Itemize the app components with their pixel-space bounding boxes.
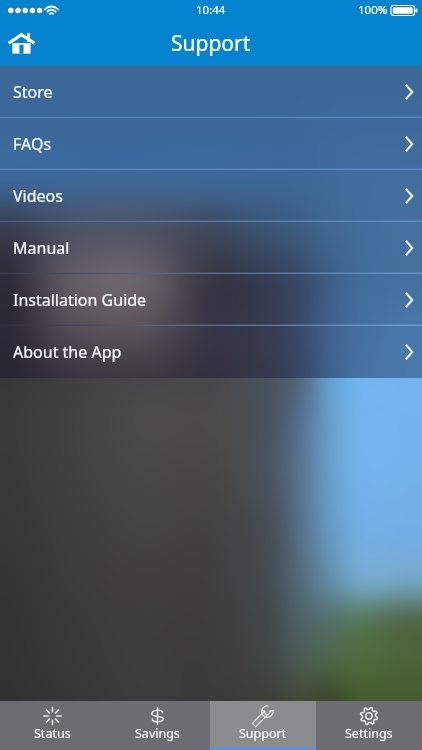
button[interactable]: Home xyxy=(0,20,46,66)
staticText: Settings xyxy=(345,725,393,742)
staticText: Manual xyxy=(13,237,70,259)
button[interactable]: About the App xyxy=(0,326,422,378)
button[interactable]: Status xyxy=(0,701,105,750)
button[interactable]: FAQs xyxy=(0,118,422,170)
staticText: 10:44 xyxy=(196,2,226,18)
staticText: Savings xyxy=(135,725,180,742)
staticText: Store xyxy=(13,81,53,103)
button[interactable]: Manual xyxy=(0,222,422,274)
button[interactable]: Videos xyxy=(0,170,422,222)
staticText: Videos xyxy=(13,185,63,207)
button[interactable]: Store xyxy=(0,66,422,118)
staticText: Support xyxy=(239,725,287,742)
staticText: 100% xyxy=(358,2,388,18)
staticText: Support xyxy=(171,29,251,58)
button[interactable]: Settings xyxy=(316,701,422,750)
button[interactable]: Installation Guide xyxy=(0,274,422,326)
button[interactable]: Support xyxy=(210,701,316,750)
staticText: FAQs xyxy=(13,133,52,155)
staticText: Installation Guide xyxy=(13,289,147,311)
staticText: About the App xyxy=(13,341,122,363)
staticText: Status xyxy=(34,725,71,742)
button[interactable]: Savings xyxy=(105,701,210,750)
